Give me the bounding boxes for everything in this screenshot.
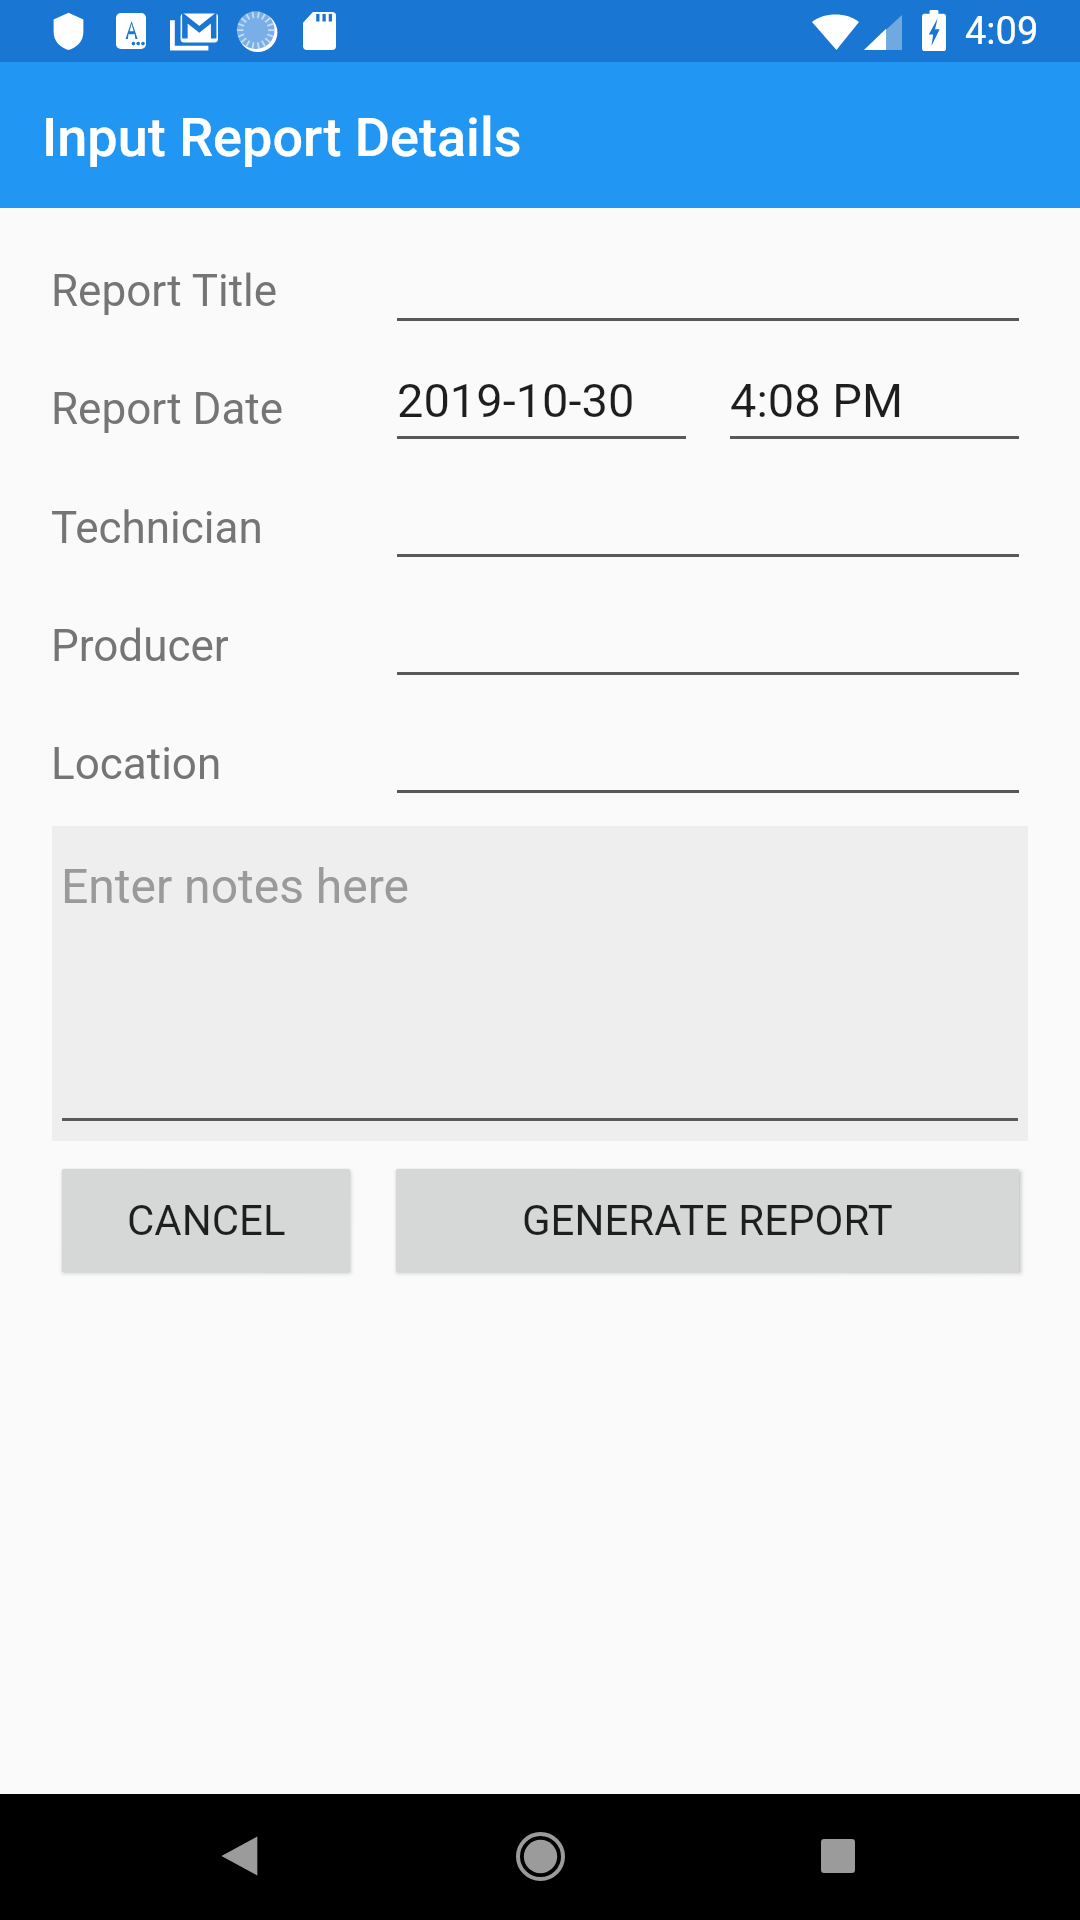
button[interactable]: Technician — [397, 490, 1019, 558]
staticText: 4:08 PM — [730, 373, 903, 428]
staticText: 4:09 — [965, 9, 1039, 54]
button[interactable]: Home — [480, 1796, 600, 1916]
staticText: Enter notes here — [61, 858, 409, 914]
button[interactable]: Producer — [397, 608, 1019, 676]
button[interactable]: Back — [181, 1796, 301, 1916]
button[interactable]: 2019-10-30 — [395, 361, 684, 439]
button[interactable]: Report Title — [397, 254, 1019, 322]
staticText: Report Title — [51, 265, 278, 317]
staticText: Location — [51, 738, 222, 790]
staticText: Producer — [51, 620, 229, 672]
button[interactable]: GENERATE REPORT — [396, 1169, 1019, 1272]
staticText: 2019-10-30 — [397, 373, 635, 428]
button[interactable]: Location — [397, 726, 1019, 794]
button[interactable]: 4:08 PM — [728, 361, 1017, 439]
staticText: Report Date — [51, 383, 284, 435]
button[interactable]: Recents — [778, 1796, 898, 1916]
button[interactable]: CANCEL — [62, 1169, 350, 1272]
staticText: Technician — [51, 502, 263, 554]
staticText: GENERATE REPORT — [522, 1196, 893, 1245]
button[interactable]: Enter notes here — [52, 826, 1028, 1141]
staticText: Input Report Details — [42, 106, 522, 169]
staticText: CANCEL — [127, 1196, 286, 1245]
